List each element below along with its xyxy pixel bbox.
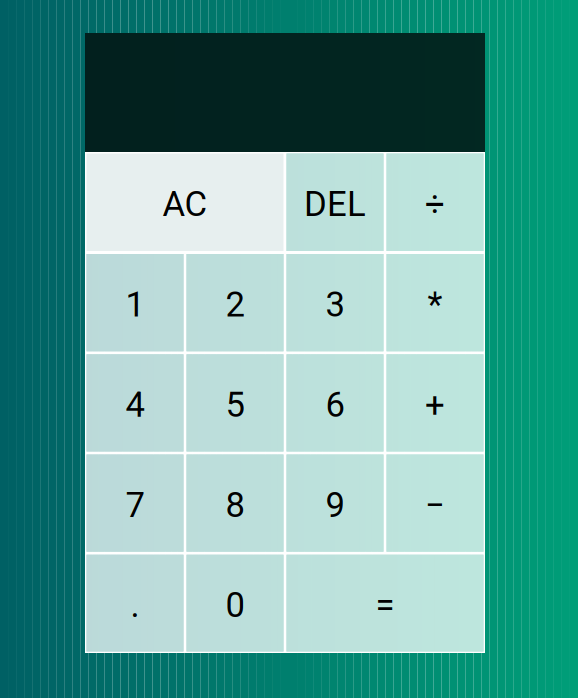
staticText: 4 [125,385,144,425]
button[interactable]: 8 [186,454,283,552]
staticText: DEL [304,184,366,224]
staticText: 7 [125,485,144,525]
button[interactable]: Decimal point [86,555,183,651]
button[interactable]: 3 [286,254,383,351]
button[interactable]: 6 [286,354,383,451]
button[interactable]: Equals [286,555,483,651]
button[interactable]: Multiply [386,254,483,351]
button[interactable]: 1 [86,254,183,351]
staticText: 3 [325,284,344,325]
staticText: 2 [225,284,244,325]
staticText: 6 [325,385,344,425]
staticText: ÷ [425,184,445,224]
button[interactable]: Plus [386,354,483,451]
staticText: + [425,385,445,425]
button[interactable]: 0 [186,555,283,651]
staticText: 0 [225,585,244,625]
staticText: 8 [225,485,244,525]
staticText: * [427,284,442,325]
staticText: 5 [225,385,244,425]
button[interactable]: 9 [286,454,383,552]
staticText: − [425,485,445,525]
button[interactable]: 5 [186,354,283,451]
staticText: 1 [125,284,144,325]
button[interactable]: Minus [386,454,483,552]
staticText: AC [162,184,207,224]
button[interactable]: Divide [386,153,483,251]
button[interactable]: 4 [86,354,183,451]
button[interactable]: Delete [286,153,383,251]
staticText: = [375,585,394,625]
staticText: . [130,585,139,625]
button[interactable]: 7 [86,454,183,552]
button[interactable]: All clear [86,153,283,251]
staticText: 9 [325,485,344,525]
button[interactable]: 2 [186,254,283,351]
